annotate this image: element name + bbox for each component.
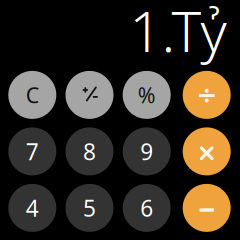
button[interactable]: 8 [65,127,113,175]
staticText: 1.Tỷ [130,0,227,67]
button[interactable]: Divide [183,71,231,119]
button[interactable]: 9 [123,127,171,175]
staticText: 7 [26,136,39,166]
button[interactable]: % [123,71,171,119]
staticText: 8 [83,136,96,166]
staticText: % [138,81,156,109]
staticText: 6 [140,193,153,223]
staticText: 4 [26,193,39,223]
staticText: C [26,81,39,109]
button[interactable]: 6 [123,184,171,232]
staticText: 5 [83,193,96,223]
button[interactable]: 5 [65,184,113,232]
button[interactable]: 7 [8,127,56,175]
button[interactable]: C [8,71,56,119]
button[interactable]: Subtract [183,184,231,232]
button[interactable]: Plus or minus [65,71,113,119]
button[interactable]: Multiply [183,127,231,175]
button[interactable]: 4 [8,184,56,232]
staticText: 9 [140,136,153,166]
